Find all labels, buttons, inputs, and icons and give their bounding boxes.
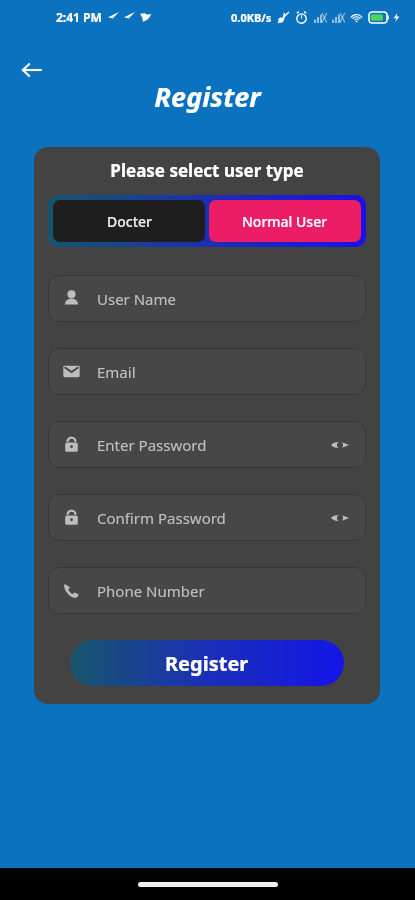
staticText: Confirm Password — [97, 508, 226, 528]
button[interactable]: Docter — [53, 200, 205, 242]
staticText: Register — [165, 650, 249, 677]
staticText: User Name — [97, 289, 177, 309]
button[interactable]: Register — [70, 640, 344, 686]
staticText: 0.0KB/s — [231, 10, 272, 25]
button[interactable]: Normal User — [209, 200, 361, 242]
button[interactable]: Back — [12, 50, 52, 90]
button[interactable]: Confirm Password — [48, 494, 366, 541]
button[interactable]: Enter Password — [48, 421, 366, 468]
button[interactable]: Email — [48, 348, 366, 395]
button[interactable]: Toggle password visibility — [328, 506, 352, 530]
staticText: Normal User — [242, 212, 328, 231]
button[interactable]: Toggle password visibility — [328, 433, 352, 457]
staticText: 2:41 PM — [56, 9, 102, 25]
button[interactable]: Phone Number — [48, 567, 366, 614]
staticText: Please select user type — [48, 159, 366, 182]
staticText: Enter Password — [97, 435, 207, 455]
staticText: Docter — [107, 212, 152, 231]
staticText: Phone Number — [97, 581, 205, 601]
button[interactable]: User Name — [48, 275, 366, 322]
staticText: Register — [0, 78, 415, 115]
staticText: Email — [97, 362, 136, 382]
